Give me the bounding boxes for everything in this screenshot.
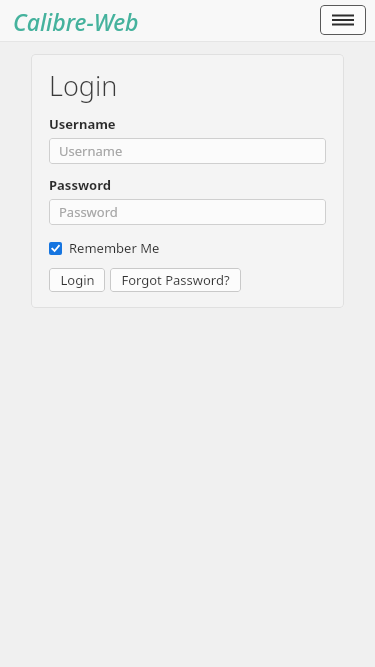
staticText: Forgot Password? bbox=[121, 271, 230, 289]
button[interactable]: Forgot Password? bbox=[110, 268, 241, 292]
button[interactable]: Remember Me bbox=[49, 238, 160, 258]
staticText: Login bbox=[49, 67, 118, 104]
button[interactable]: Menu bbox=[320, 5, 366, 35]
staticText: Username bbox=[49, 115, 116, 133]
staticText: Login bbox=[60, 271, 95, 289]
staticText: Username bbox=[59, 142, 123, 160]
button[interactable]: Login bbox=[49, 268, 105, 292]
button[interactable]: Calibre-Web bbox=[13, 6, 139, 37]
staticText: Password bbox=[59, 203, 118, 221]
staticText: Calibre-Web bbox=[13, 6, 139, 37]
button[interactable]: Username bbox=[49, 138, 326, 164]
staticText: Password bbox=[49, 176, 111, 194]
staticText: Remember Me bbox=[69, 239, 160, 257]
button[interactable]: Password bbox=[49, 199, 326, 225]
